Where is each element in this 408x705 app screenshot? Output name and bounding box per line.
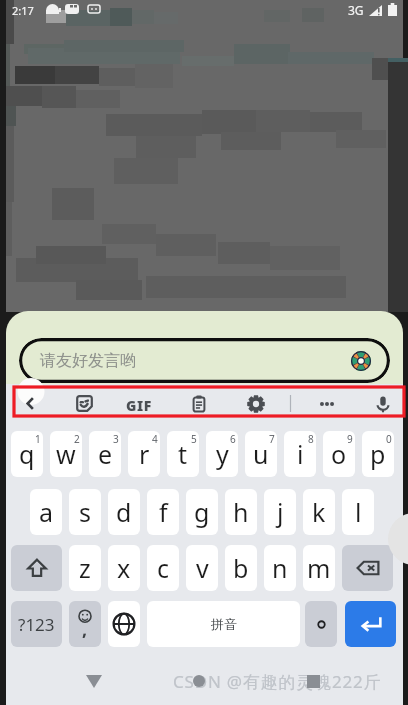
button[interactable]: g [186,489,218,535]
button[interactable]: Enter [345,601,396,647]
button[interactable]: v [186,545,218,591]
staticText: t [178,437,188,471]
staticText: n [272,551,288,585]
button[interactable]: k [303,489,335,535]
button[interactable]: w [50,431,82,477]
button[interactable]: z [69,545,101,591]
button[interactable]: y [206,431,238,477]
staticText: f [159,495,168,529]
staticText: GIF [126,396,152,415]
button[interactable]: Sticker [69,390,99,417]
staticText: u [253,437,269,471]
button[interactable]: Shift [11,545,62,591]
button[interactable]: p [362,431,394,477]
button[interactable]: Settings [241,390,271,417]
button[interactable]: 拼音 [147,601,300,647]
button[interactable]: Floating assistant [388,513,408,565]
button[interactable]: Change keyboard language [108,601,140,647]
button[interactable]: Emoji and comma [69,601,101,647]
button[interactable]: i [284,431,316,477]
staticText: 0 [386,432,392,446]
staticText: h [233,495,249,529]
staticText: s [79,495,91,529]
button[interactable]: j [264,489,296,535]
button[interactable]: d [108,489,140,535]
staticText: m [307,551,331,585]
staticText: i [297,437,304,471]
button[interactable]: e [89,431,121,477]
staticText: 请友好发言哟 [40,351,136,371]
button[interactable]: r [128,431,160,477]
staticText: w [56,437,76,471]
staticText: x [117,551,131,585]
button[interactable]: Voice input [369,390,397,417]
staticText: c [157,551,170,585]
staticText: 2 [74,432,80,446]
button[interactable]: Back [16,390,44,417]
staticText: p [370,437,386,471]
button[interactable]: GIF [122,390,156,417]
staticText: r [139,437,150,471]
button[interactable]: o [323,431,355,477]
button[interactable]: b [225,545,257,591]
staticText: 1 [35,432,41,446]
staticText: j [277,495,284,529]
button[interactable]: x [108,545,140,591]
staticText: 9 [347,432,353,446]
button[interactable]: u [245,431,277,477]
staticText: 5 [191,432,197,446]
button[interactable]: n [264,545,296,591]
staticText: k [312,495,326,529]
button[interactable]: s [69,489,101,535]
staticText: y [216,437,229,471]
staticText: b [233,551,249,585]
button[interactable]: h [225,489,257,535]
staticText: 8 [308,432,314,446]
button[interactable]: f [147,489,179,535]
staticText: z [79,551,91,585]
button[interactable]: l [342,489,374,535]
button[interactable]: 请友好发言哟 [19,338,390,383]
staticText: d [116,495,132,529]
button[interactable]: t [167,431,199,477]
button[interactable]: Hide keyboard [68,662,120,700]
button[interactable]: Recent apps [287,662,339,700]
button[interactable]: ?123 [11,601,62,647]
button[interactable] [305,601,337,647]
staticText: 3G [348,2,364,18]
staticText: l [355,495,362,529]
button[interactable]: Home [173,662,225,700]
button[interactable]: c [147,545,179,591]
staticText: q [19,437,35,471]
staticText: o [331,437,347,471]
staticText: 7 [269,432,275,446]
staticText: CSDN @有趣的灵魂222斤 [173,670,382,693]
staticText: a [39,495,54,529]
staticText: , [82,617,88,642]
button[interactable]: Backspace [342,545,393,591]
staticText: 6 [230,432,236,446]
button[interactable]: m [303,545,335,591]
button[interactable]: More options [310,390,344,417]
staticText: ?123 [18,613,55,636]
staticText: v [196,551,209,585]
staticText: 拼音 [211,616,237,632]
button[interactable]: a [30,489,62,535]
staticText: 3 [113,432,119,446]
button[interactable]: q [11,431,43,477]
button[interactable]: Clipboard [184,390,214,417]
button[interactable]: Lifebuoy [351,351,371,371]
staticText: 4 [152,432,158,446]
staticText: 2:17 [12,3,34,18]
staticText: g [194,495,210,529]
staticText: e [98,437,113,471]
